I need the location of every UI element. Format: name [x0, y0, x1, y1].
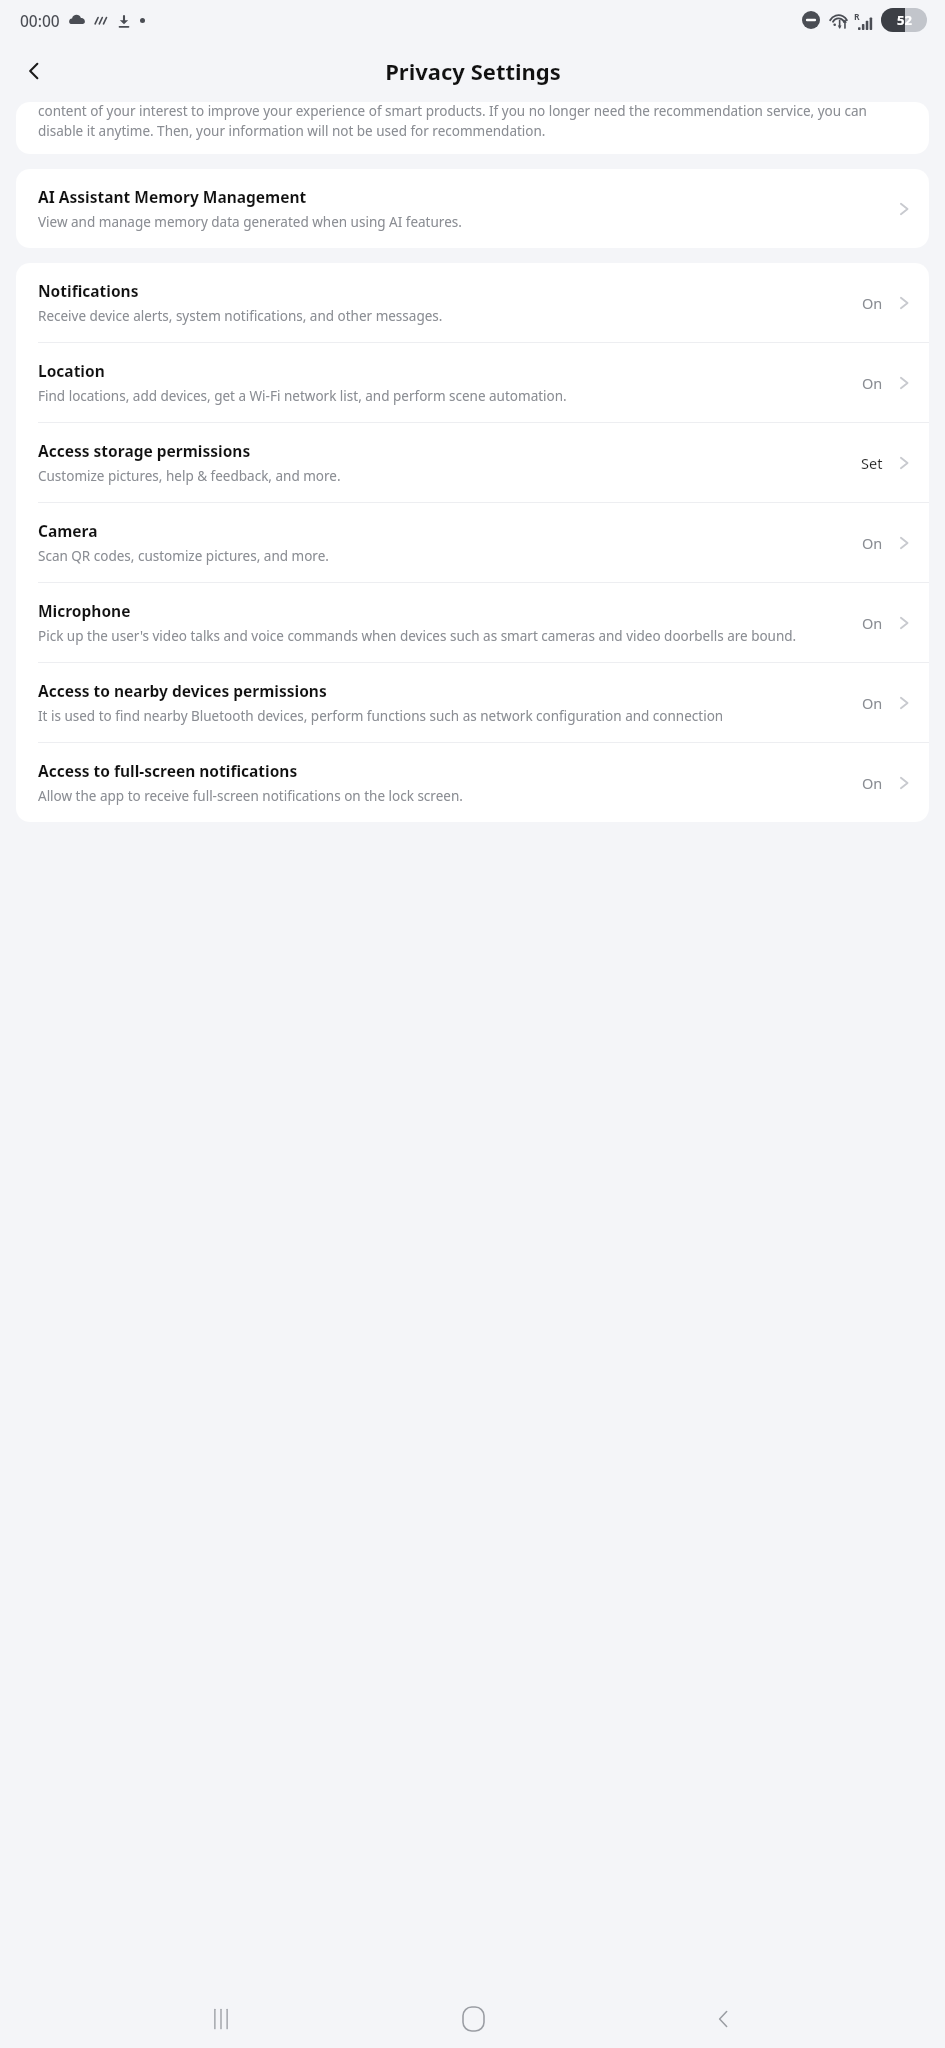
- button[interactable]: Access to full-screen notifications: [16, 743, 929, 822]
- button[interactable]: Home: [443, 1990, 503, 2048]
- button[interactable]: content of your interest to improve your…: [16, 102, 929, 154]
- button[interactable]: Access to nearby devices permissions: [16, 663, 929, 742]
- staticText: Receive device alerts, system notificati…: [38, 307, 443, 325]
- staticText: Access to full-screen notifications: [38, 760, 298, 781]
- staticText: On: [862, 533, 883, 553]
- button[interactable]: Back: [694, 1990, 754, 2048]
- button[interactable]: AI Assistant Memory Management: [16, 169, 929, 248]
- staticText: Notifications: [38, 280, 139, 301]
- staticText: Scan QR codes, customize pictures, and m…: [38, 547, 329, 565]
- staticText: Privacy Settings: [385, 56, 561, 86]
- staticText: 52: [897, 11, 912, 29]
- staticText: Camera: [38, 520, 98, 541]
- staticText: Microphone: [38, 600, 131, 621]
- button[interactable]: Recents: [191, 1990, 251, 2048]
- button[interactable]: Access storage permissions: [16, 423, 929, 502]
- staticText: content of your interest to improve your…: [38, 102, 907, 140]
- staticText: R: [854, 11, 860, 23]
- button[interactable]: Location: [16, 343, 929, 422]
- staticText: Access storage permissions: [38, 440, 251, 461]
- staticText: Access to nearby devices permissions: [38, 680, 327, 701]
- staticText: On: [862, 773, 883, 793]
- staticText: On: [862, 693, 883, 713]
- button[interactable]: Notifications: [16, 263, 929, 342]
- staticText: Pick up the user's video talks and voice…: [38, 627, 797, 645]
- staticText: Find locations, add devices, get a Wi-Fi…: [38, 387, 567, 405]
- staticText: Location: [38, 360, 105, 381]
- staticText: On: [862, 613, 883, 633]
- button[interactable]: Microphone: [16, 583, 929, 662]
- staticText: On: [862, 293, 883, 313]
- staticText: AI Assistant Memory Management: [38, 186, 307, 207]
- button[interactable]: Back: [8, 45, 60, 97]
- button[interactable]: Camera: [16, 503, 929, 582]
- staticText: Customize pictures, help & feedback, and…: [38, 467, 341, 485]
- staticText: 00:00: [20, 10, 60, 31]
- staticText: It is used to find nearby Bluetooth devi…: [38, 707, 724, 725]
- staticText: View and manage memory data generated wh…: [38, 213, 462, 231]
- staticText: Set: [861, 453, 883, 473]
- staticText: On: [862, 373, 883, 393]
- staticText: Allow the app to receive full-screen not…: [38, 787, 463, 805]
